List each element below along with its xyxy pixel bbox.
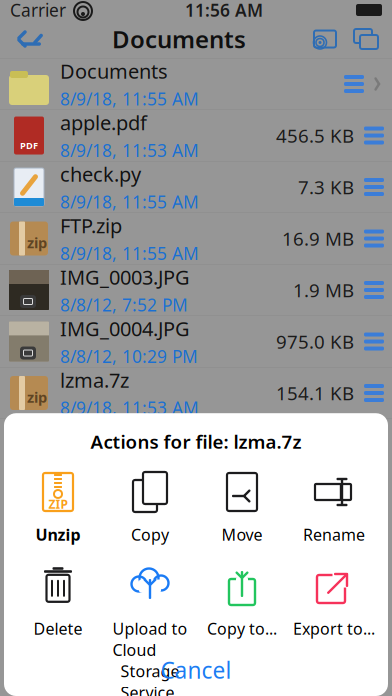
staticText: Rename (303, 524, 365, 545)
button[interactable]: Upload to Cloud (104, 560, 196, 648)
staticText: 8/9/18, 11:53 AM (60, 139, 199, 162)
staticText: check.py (60, 161, 141, 187)
staticText: IMG_0004.JPG (60, 315, 190, 342)
button[interactable]: Delete (12, 560, 104, 648)
staticText: 16.9 MB (282, 226, 354, 251)
staticText: 8/9/18, 11:55 AM (60, 190, 199, 213)
staticText: IMG_0003.JPG (60, 264, 190, 290)
button[interactable]: Cancel (4, 648, 388, 692)
button[interactable]: Copy to... (196, 560, 288, 648)
staticText: 8/9/18, 11:55 AM (60, 87, 199, 110)
staticText: 8/8/12, 7:52 PM (60, 293, 188, 316)
button[interactable]: Export to... (288, 560, 380, 648)
staticText: Documents (112, 23, 246, 55)
staticText: Storage Service (120, 660, 179, 696)
staticText: 1.9 MB (293, 278, 354, 302)
staticText: Upload to Cloud (112, 618, 187, 660)
button[interactable]: Cast (312, 29, 338, 49)
staticText: lzma.7z (60, 367, 129, 393)
staticText: FTP.zip (60, 212, 122, 239)
staticText: Documents (60, 58, 168, 84)
button[interactable]: Rename (288, 466, 380, 554)
staticText: Carrier (10, 0, 66, 21)
staticText: zip (27, 233, 47, 252)
staticText: Cancel (160, 655, 231, 685)
staticText: Delete (33, 618, 82, 639)
button[interactable]: PDF (0, 110, 392, 161)
staticText: 8/9/18, 11:53 AM (60, 396, 199, 419)
button[interactable]: check.py (0, 161, 392, 213)
button[interactable]: Back (12, 25, 46, 53)
staticText: Export to... (293, 618, 375, 639)
staticText: Move (221, 524, 262, 545)
staticText: Unzip (35, 524, 80, 545)
staticText: apple.pdf (60, 109, 147, 136)
button[interactable]: ZIP (12, 466, 104, 554)
button[interactable]: zip (0, 213, 392, 264)
button[interactable]: Windows (346, 27, 380, 51)
staticText: 975.0 KB (276, 329, 354, 354)
staticText: Actions for file: lzma.7z (90, 429, 301, 454)
staticText: Copy (131, 524, 169, 545)
button[interactable]: zip (0, 367, 392, 419)
staticText: Copy to... (207, 618, 277, 639)
staticText: 8/8/12, 10:29 PM (60, 345, 198, 368)
button[interactable]: Documents (0, 58, 392, 110)
button[interactable]: Move (196, 466, 288, 554)
staticText: 154.1 KB (276, 381, 354, 405)
staticText: zip (27, 387, 47, 407)
button[interactable]: IMG_0003.JPG (0, 264, 392, 316)
staticText: PDF (20, 139, 38, 151)
staticText: 7.3 KB (298, 175, 354, 199)
staticText: ZIP (48, 496, 67, 512)
staticText: 456.5 KB (276, 123, 354, 148)
staticText: 8/9/18, 11:55 AM (60, 242, 199, 265)
button[interactable]: IMG_0004.JPG (0, 316, 392, 367)
staticText: 11:56 AM (185, 0, 263, 21)
button[interactable]: Copy (104, 466, 196, 554)
